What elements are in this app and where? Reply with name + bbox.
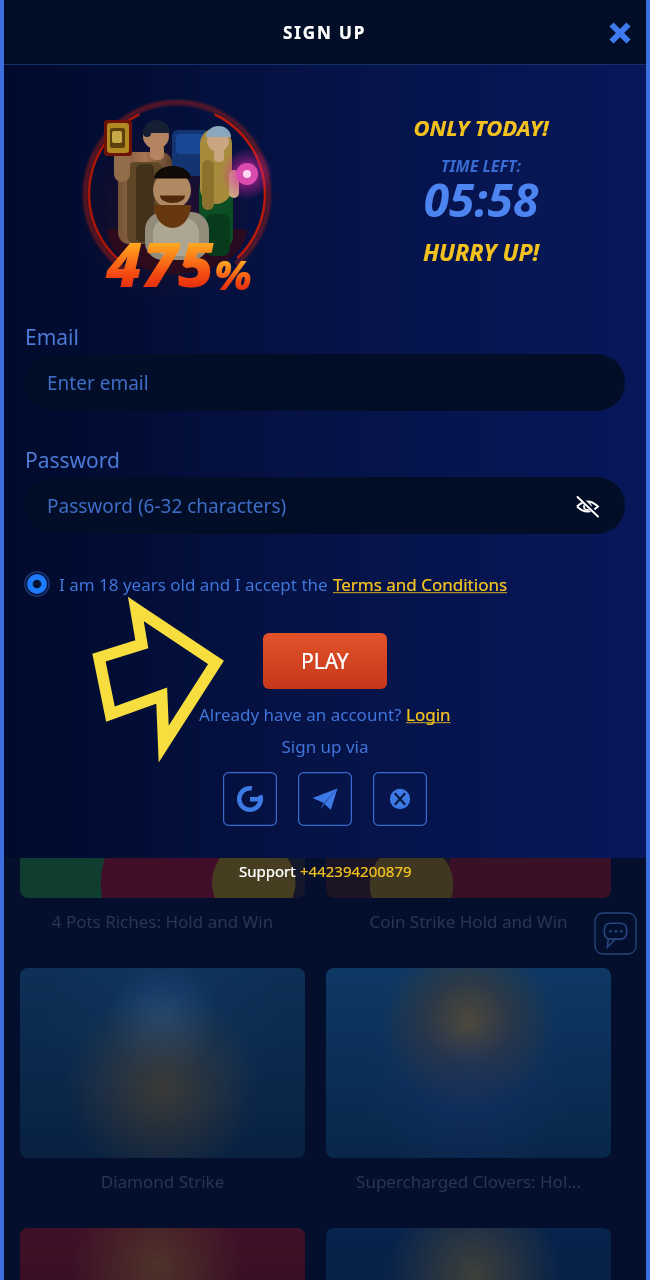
button[interactable] — [326, 968, 611, 1158]
staticText: TIME LEFT: — [381, 155, 581, 177]
staticText: Terms and Conditions — [333, 573, 508, 596]
button[interactable]: Terms and Conditions — [333, 573, 508, 596]
staticText: Support — [239, 861, 300, 881]
staticText: 05:58 — [381, 168, 581, 231]
staticText: Enter email — [47, 370, 149, 396]
button[interactable]: Login — [406, 703, 451, 726]
button[interactable]: Enter email — [25, 354, 625, 411]
staticText: Password (6-32 characters) — [47, 493, 287, 519]
staticText: Coin Strike Hold and Win — [326, 910, 611, 933]
staticText: +442394200879 — [300, 861, 412, 881]
staticText: PLAY — [301, 647, 349, 676]
button[interactable]: Password (6-32 characters) — [25, 477, 625, 534]
staticText: % — [214, 247, 252, 301]
staticText: 4 Pots Riches: Hold and Win — [20, 910, 305, 933]
staticText: 475 — [106, 221, 214, 305]
button[interactable]: I am 18 years old and I accept the — [24, 571, 508, 597]
staticText: Email — [25, 323, 79, 352]
button[interactable] — [20, 1228, 305, 1280]
staticText: ONLY TODAY! — [381, 112, 581, 142]
button[interactable] — [326, 708, 611, 898]
staticText: Supercharged Clovers: Hol... — [326, 1170, 611, 1193]
button[interactable]: Show password — [571, 490, 603, 522]
staticText: Password — [25, 446, 120, 475]
staticText: Already have an account? — [199, 703, 406, 726]
staticText: Login — [406, 703, 451, 726]
staticText: Diamond Strike — [20, 1170, 305, 1193]
button[interactable] — [20, 968, 305, 1158]
button[interactable]: Chat support — [594, 912, 637, 955]
button[interactable] — [326, 1228, 611, 1280]
staticText: I am 18 years old and I accept the — [59, 573, 333, 596]
button[interactable]: Close — [597, 10, 643, 56]
button[interactable]: Sign up with Telegram — [298, 772, 352, 826]
button[interactable]: Sign up with X — [373, 772, 427, 826]
staticText: HURRY UP! — [381, 236, 581, 267]
staticText: Sign up via — [0, 735, 650, 758]
button[interactable]: PLAY — [263, 633, 387, 689]
staticText: SIGN UP — [283, 21, 367, 44]
button[interactable]: Sign up with Google — [223, 772, 277, 826]
button[interactable]: Support — [0, 859, 650, 883]
button[interactable] — [20, 708, 305, 898]
